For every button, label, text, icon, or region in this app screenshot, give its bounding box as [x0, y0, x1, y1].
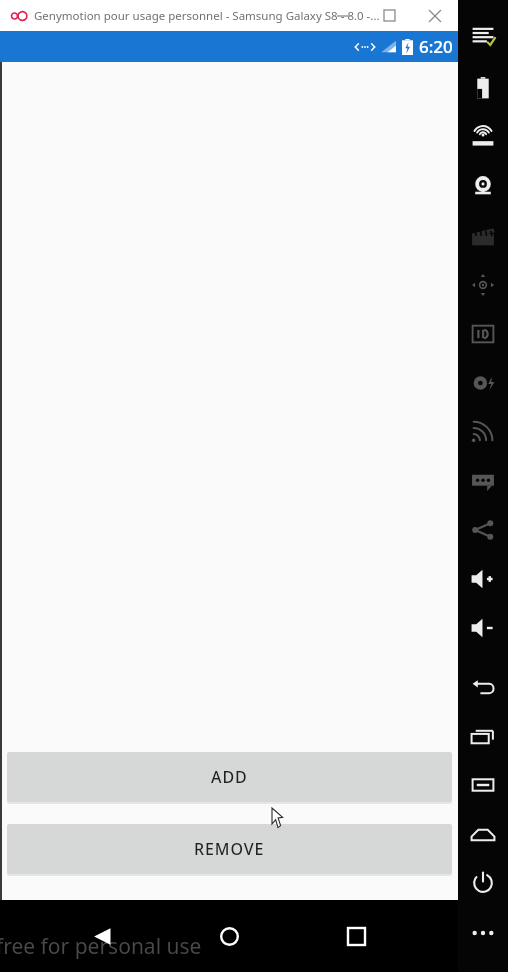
button[interactable]: Share: [458, 508, 508, 552]
button[interactable]: Camera: [458, 164, 508, 208]
button[interactable]: REMOVE: [7, 824, 452, 874]
button[interactable]: Battery: [458, 66, 508, 110]
button[interactable]: GPS: [458, 115, 508, 159]
button[interactable]: Close: [412, 0, 458, 31]
button[interactable]: Minimize: [320, 0, 366, 31]
button[interactable]: Back: [458, 666, 508, 710]
button[interactable]: Identity: [458, 312, 508, 356]
button[interactable]: Disk IO: [458, 214, 508, 258]
button[interactable]: Volume up: [458, 557, 508, 601]
staticText: free for personal use: [0, 932, 202, 961]
button[interactable]: Maximize: [366, 0, 412, 31]
button[interactable]: Menu: [458, 763, 508, 807]
button[interactable]: Network: [458, 409, 508, 453]
button[interactable]: Open GApps: [458, 12, 508, 56]
button[interactable]: Recents: [458, 714, 508, 758]
button[interactable]: Home: [193, 900, 265, 972]
button[interactable]: Recent apps: [320, 900, 392, 972]
staticText: ADD: [211, 766, 248, 788]
button[interactable]: Rotate: [458, 263, 508, 307]
button[interactable]: Power: [458, 861, 508, 905]
button[interactable]: Back: [66, 900, 138, 972]
button[interactable]: SMS: [458, 459, 508, 503]
button[interactable]: Volume down: [458, 606, 508, 650]
button[interactable]: Baseband: [458, 361, 508, 405]
button[interactable]: Home: [458, 813, 508, 857]
staticText: Genymotion pour usage personnel - Samsun…: [34, 8, 380, 24]
button[interactable]: ADD: [7, 752, 452, 802]
staticText: REMOVE: [194, 838, 265, 860]
button[interactable]: More: [458, 911, 508, 955]
staticText: 6:20: [419, 35, 453, 58]
